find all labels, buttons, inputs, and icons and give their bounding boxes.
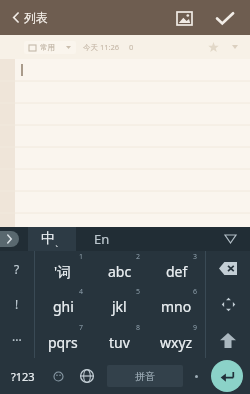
button[interactable]: ?123 [0,358,46,394]
button[interactable]: Emoji [46,358,70,394]
staticText: pqrs [48,333,78,352]
staticText: 拼音 [135,370,155,383]
button[interactable]: Insert image [166,3,202,33]
button[interactable]: 拼音 [107,365,183,387]
staticText: 2 [136,252,141,262]
staticText: tuv [109,333,130,352]
button[interactable]: 8 [91,322,148,358]
button[interactable]: En [76,227,128,251]
button[interactable]: Period [188,358,204,394]
staticText: 今天 11:26 [83,42,120,52]
button[interactable]: Change language [70,358,104,394]
staticText: ? [14,261,20,277]
staticText: jkl [112,297,127,316]
staticText: 6 [193,287,198,297]
staticText: '词 [54,262,72,281]
staticText: ··· [12,332,22,348]
staticText: ! [15,296,19,312]
button[interactable]: Expand keyboard [0,227,22,251]
button[interactable]: 中 [28,227,76,251]
staticText: 4 [79,287,84,297]
staticText: mno [161,297,192,316]
button[interactable]: 常用 [24,41,76,54]
button[interactable]: 3 [148,251,205,286]
staticText: 1 [79,252,84,262]
button[interactable]: ··· [0,322,34,358]
button[interactable]: Shift [206,322,250,358]
staticText: 常用 [40,43,55,52]
staticText: 8 [136,323,141,333]
button[interactable]: Done [205,3,245,33]
button[interactable]: Backspace [206,251,250,286]
button[interactable]: 4 [35,286,91,322]
button[interactable]: 9 [148,322,205,358]
button[interactable]: 5 [91,286,148,322]
button[interactable]: 7 [35,322,91,358]
staticText: En [94,230,110,248]
staticText: ?123 [11,369,35,384]
staticText: 0 [129,42,134,52]
button[interactable]: Cursor keys [206,286,250,322]
button[interactable]: ! [0,286,34,322]
button[interactable]: 6 [148,286,205,322]
staticText: 3 [193,252,198,262]
staticText: def [166,262,188,281]
staticText: ghi [53,297,74,316]
button[interactable]: 2 [91,251,148,286]
button[interactable]: ? [0,251,34,286]
button[interactable]: 列表 [5,5,56,30]
staticText: wxyz [160,333,193,352]
button[interactable]: Hide keyboard [215,227,245,251]
staticText: 中 [41,230,55,248]
staticText: 9 [193,323,198,333]
button[interactable]: 1 [35,251,91,286]
staticText: 列表 [24,10,48,25]
button[interactable]: Enter [204,358,250,394]
button[interactable]: Favourite [203,37,223,57]
staticText: 7 [79,323,84,333]
staticText: abc [108,262,132,281]
button[interactable]: More options [227,39,243,55]
staticText: 、 [55,238,63,248]
staticText: 5 [136,287,141,297]
